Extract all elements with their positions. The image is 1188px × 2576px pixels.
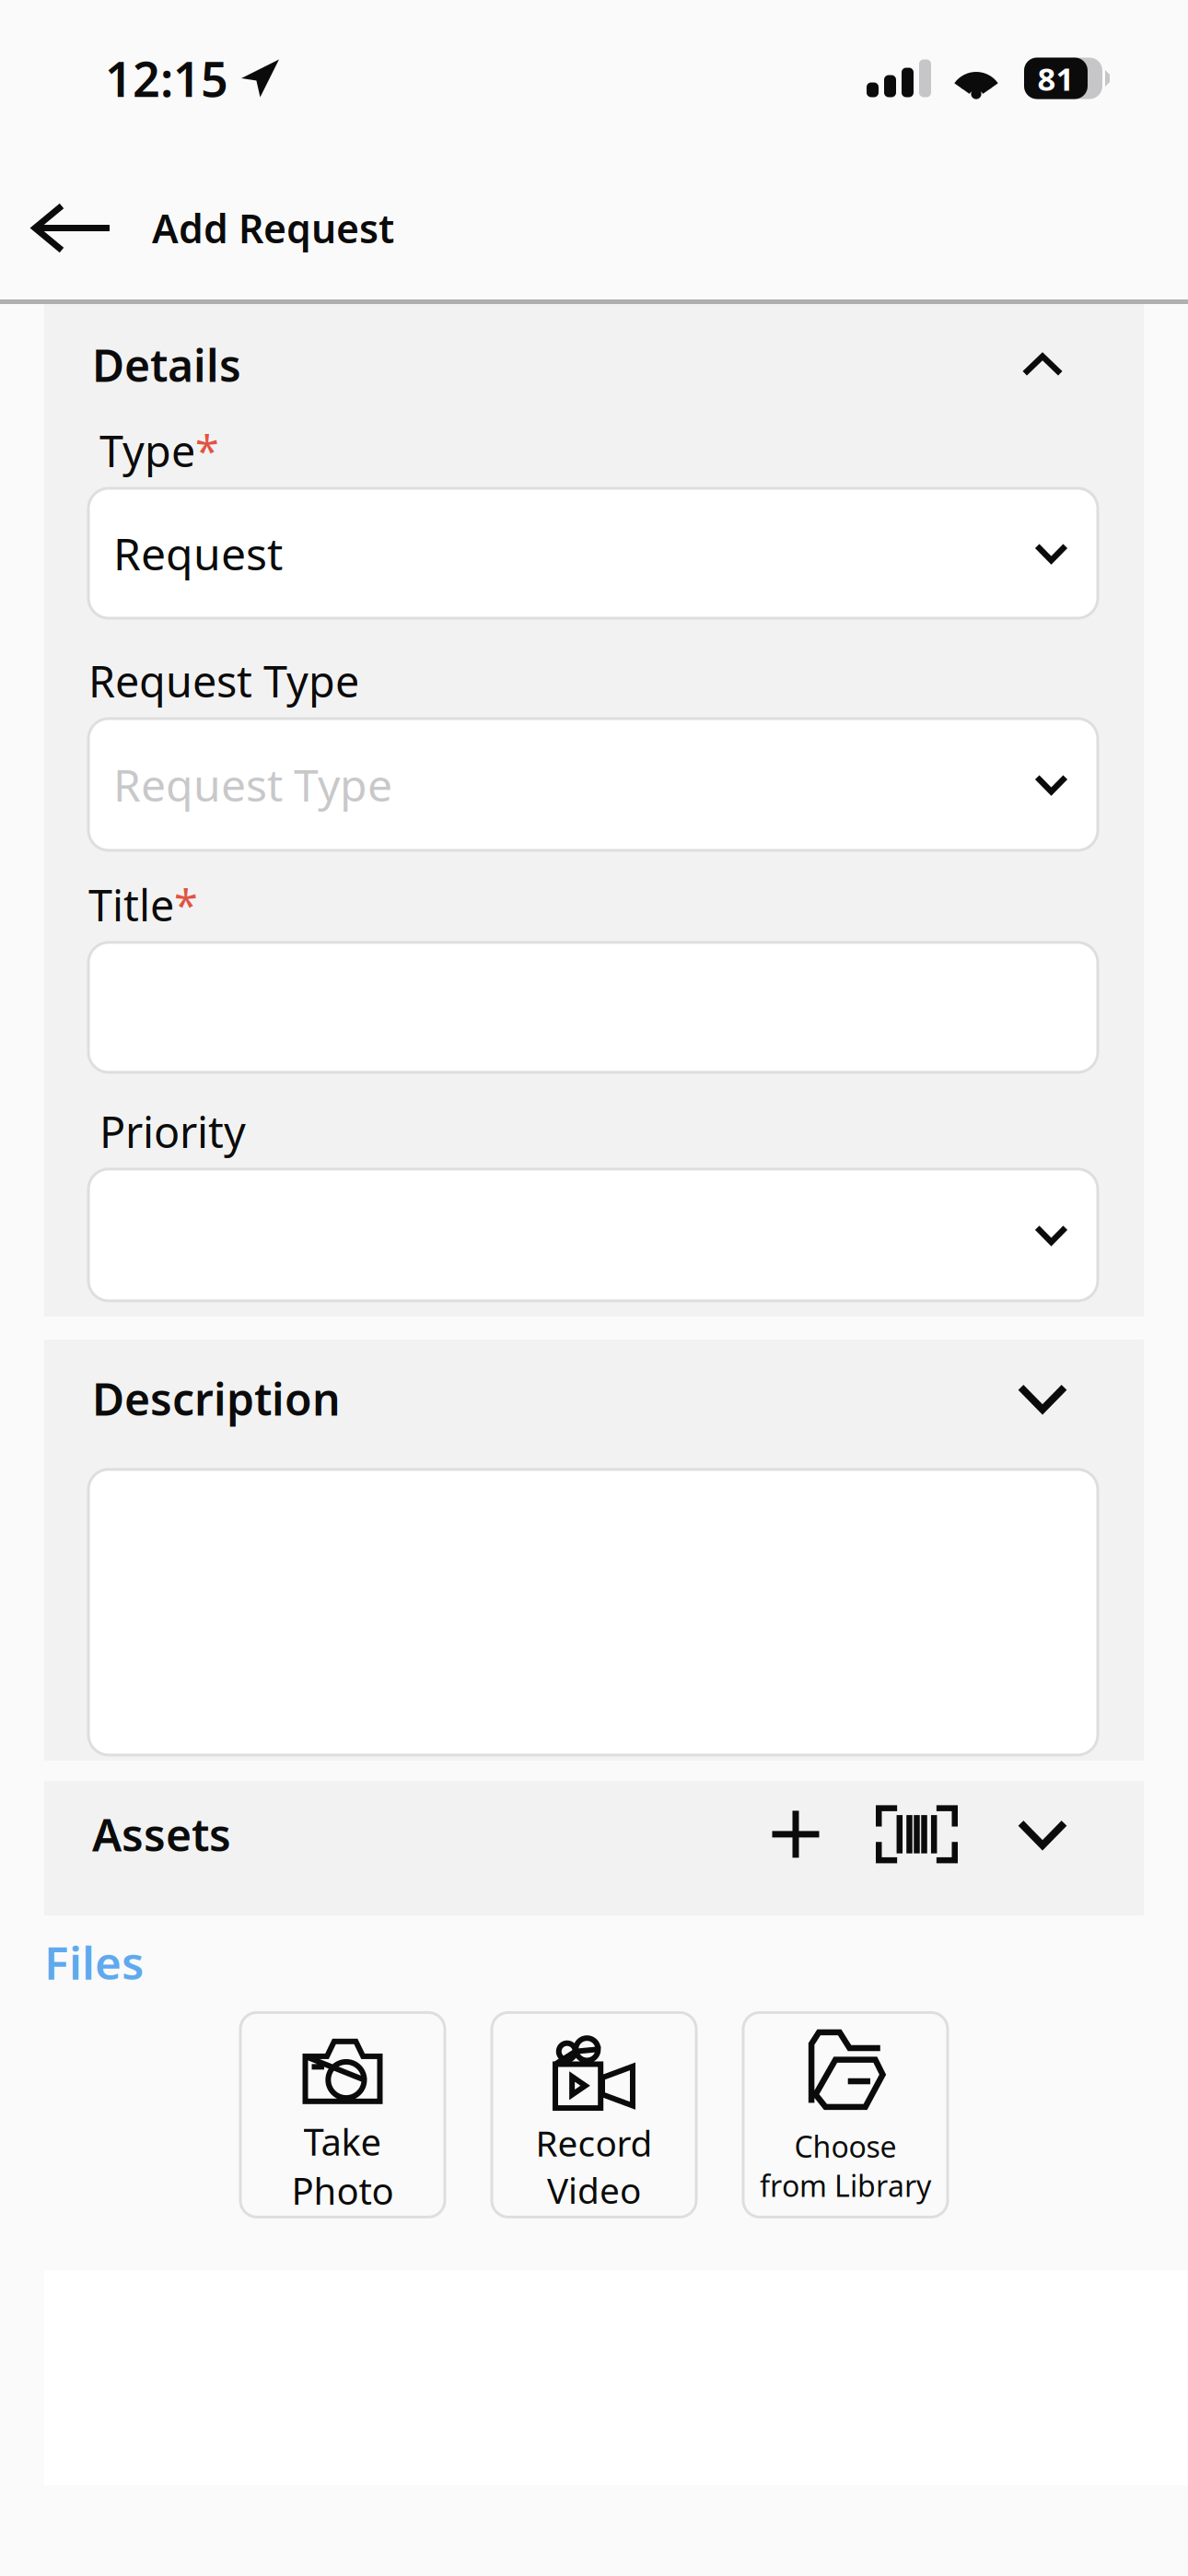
staticText: Record	[536, 2119, 652, 2166]
button[interactable]: Take	[240, 2013, 445, 2217]
staticText: Take	[303, 2117, 382, 2166]
staticText: Files	[44, 1932, 144, 1992]
button[interactable]: Expand Assets	[992, 1796, 1093, 1873]
staticText: Add Request	[152, 202, 394, 254]
button[interactable]: Scan barcode	[866, 1805, 992, 1863]
staticText: Request	[113, 524, 283, 583]
button[interactable]: Collapse Details	[992, 326, 1093, 404]
staticText: from Library	[760, 2166, 931, 2205]
staticText: 12:15	[105, 47, 228, 110]
staticText: Video	[547, 2166, 641, 2214]
button[interactable]: Add asset	[765, 1808, 866, 1861]
staticText: Choose	[794, 2127, 897, 2166]
staticText: Request Type	[113, 755, 392, 814]
staticText: Type	[88, 422, 195, 479]
staticText: Photo	[291, 2166, 394, 2215]
staticText: Assets	[92, 1805, 231, 1864]
button[interactable]: Choose	[743, 2013, 948, 2217]
staticText: Details	[92, 335, 241, 394]
staticText: Description	[92, 1369, 341, 1428]
button[interactable]: Back	[0, 176, 152, 281]
staticText: Title	[88, 876, 174, 933]
staticText: *	[195, 422, 219, 479]
staticText: 81	[1037, 57, 1074, 100]
staticText: Priority	[88, 1103, 246, 1160]
staticText: *	[174, 876, 198, 933]
button[interactable]: Record	[492, 2013, 696, 2217]
staticText: Request Type	[88, 652, 359, 709]
button[interactable]: Expand Description	[992, 1360, 1093, 1437]
